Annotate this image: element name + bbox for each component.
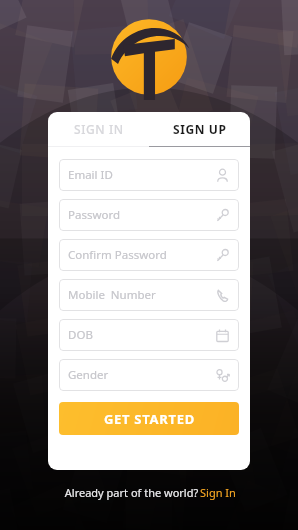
staticText: SIGN IN: [74, 121, 124, 137]
button[interactable]: Password: [59, 199, 239, 231]
other: App logo: [106, 14, 192, 100]
button[interactable]: Mobile Number: [59, 279, 239, 311]
button[interactable]: Already part of the world?: [63, 485, 236, 500]
button[interactable]: Email ID: [59, 159, 239, 191]
button[interactable]: Confirm Password: [59, 239, 239, 271]
button[interactable]: GET STARTED: [59, 402, 239, 435]
staticText: DOB: [68, 327, 215, 343]
staticText: Mobile Number: [68, 287, 215, 303]
staticText: SIGN UP: [173, 121, 227, 137]
staticText: Email ID: [68, 167, 215, 183]
staticText: Sign In: [200, 485, 236, 500]
staticText: GET STARTED: [104, 410, 195, 428]
staticText: Password: [68, 207, 215, 223]
button[interactable]: DOB: [59, 319, 239, 351]
button[interactable]: Gender: [59, 359, 239, 391]
staticText: Confirm Password: [68, 247, 215, 263]
staticText: Already part of the world?: [63, 485, 200, 500]
button[interactable]: SIGN UP: [149, 112, 250, 146]
staticText: Gender: [68, 367, 215, 383]
button[interactable]: SIGN IN: [48, 112, 149, 146]
